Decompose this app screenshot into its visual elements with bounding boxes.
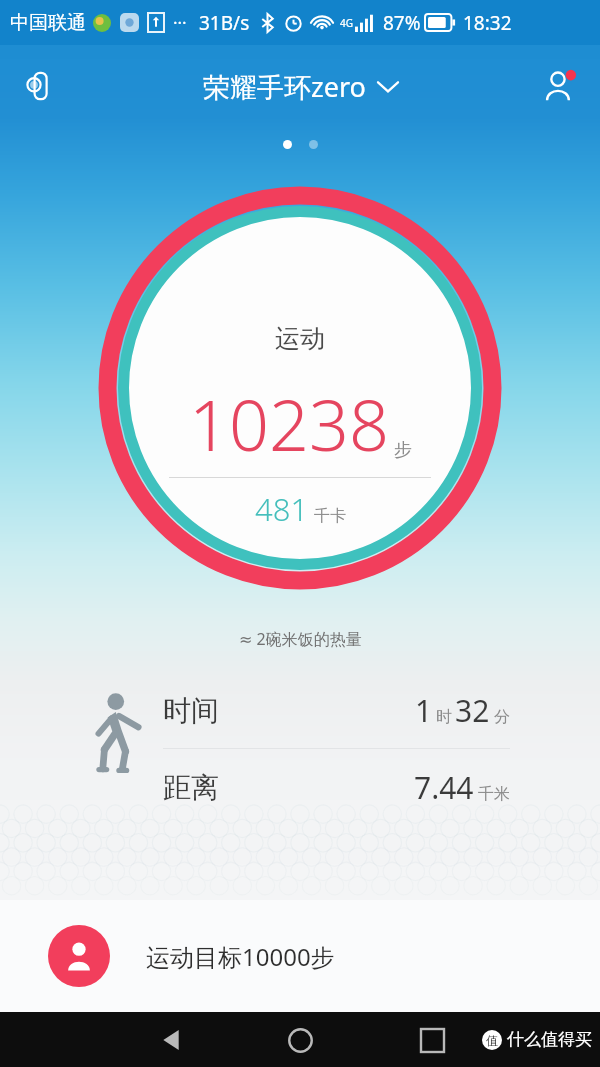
staticText: 1 [415, 690, 433, 731]
staticText: 千米 [478, 784, 510, 804]
staticText: 4G [340, 16, 353, 30]
button[interactable]: 运动 [98, 186, 502, 590]
button[interactable]: Back [148, 1017, 194, 1063]
staticText: 距离 [163, 770, 219, 805]
staticText: 31B/s [199, 10, 250, 36]
staticText: 时 [436, 707, 452, 727]
button[interactable]: Recents [409, 1017, 455, 1063]
staticText: 荣耀手环zero [203, 68, 366, 105]
staticText: 什么值得买 [507, 1029, 592, 1050]
button[interactable]: 距离 [163, 749, 510, 825]
staticText: 值 [486, 1033, 498, 1048]
staticText: 步 [394, 439, 412, 462]
staticText: 87% [383, 10, 421, 36]
staticText: ··· [173, 11, 187, 34]
staticText: 分 [494, 707, 510, 727]
staticText: ≈ 2碗米饭的热量 [239, 628, 362, 650]
staticText: 18:32 [463, 10, 512, 36]
staticText: 运动目标10000步 [146, 940, 335, 973]
staticText: 时间 [163, 693, 219, 728]
button[interactable]: Home [277, 1017, 323, 1063]
button[interactable]: 荣耀手环zero [203, 68, 398, 105]
staticText: 10238 [189, 376, 389, 471]
button[interactable]: 我的设备 [14, 60, 66, 112]
staticText: 千卡 [314, 506, 346, 526]
staticText: 481 [255, 488, 309, 530]
staticText: 7.44 [414, 767, 474, 808]
button[interactable]: 个人中心 [534, 60, 586, 112]
button[interactable]: 时间 [163, 672, 510, 748]
button[interactable]: 运动目标10000步 [0, 900, 600, 1012]
staticText: 中国联通 [10, 11, 86, 35]
staticText: 运动 [275, 323, 325, 354]
staticText: 32 [455, 690, 490, 731]
